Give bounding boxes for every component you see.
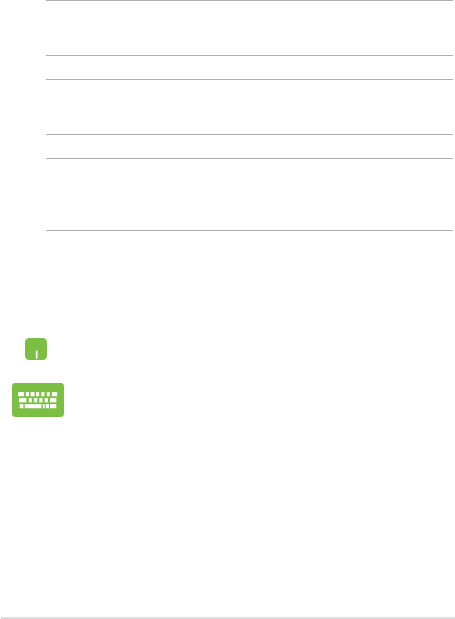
button[interactable]: Touchpad [25, 338, 47, 360]
button[interactable]: Keyboard [12, 383, 64, 417]
